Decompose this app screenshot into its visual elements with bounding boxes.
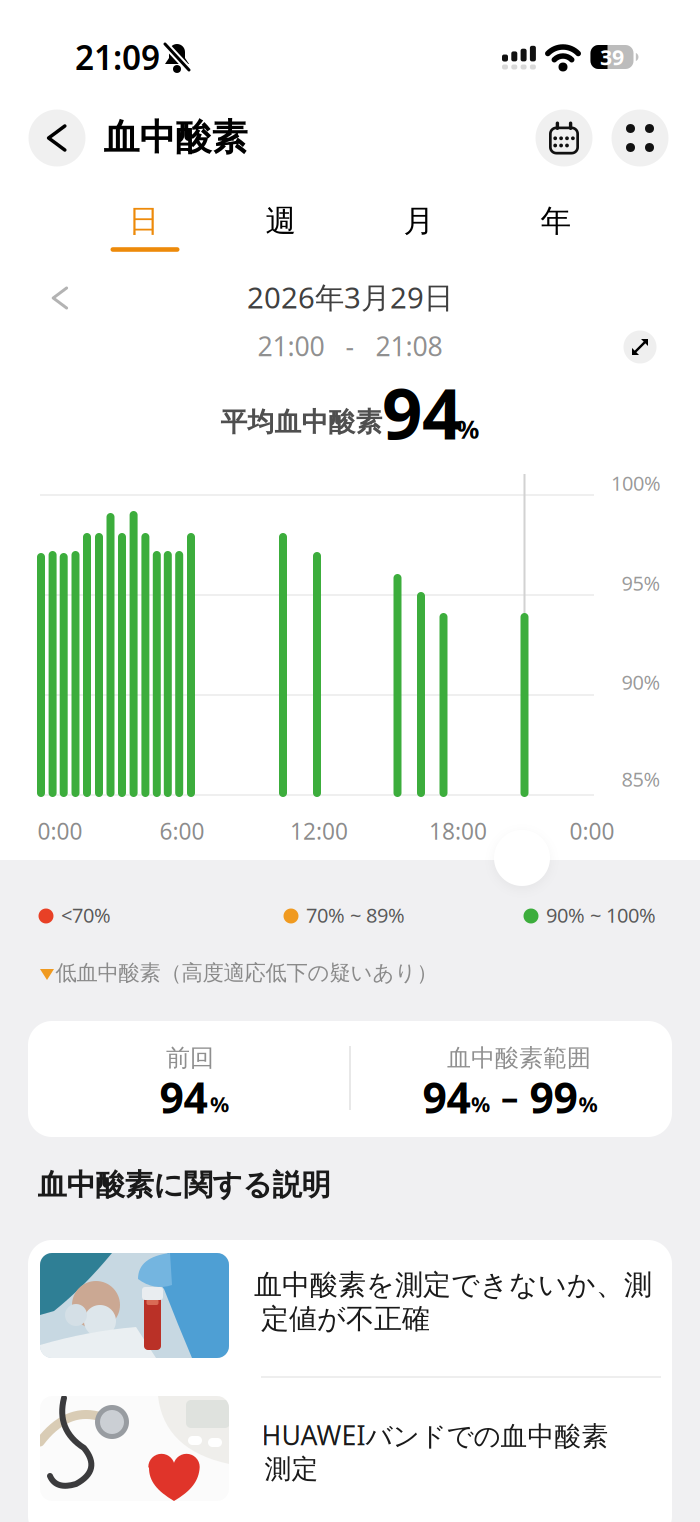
- staticText: 90%: [621, 669, 660, 695]
- staticText: HUAWEIバンドでの血中酸素: [261, 1417, 608, 1453]
- staticText: 70% ~ 89%: [306, 902, 405, 928]
- staticText: 95%: [621, 570, 660, 596]
- staticText: 低血中酸素（高度適応低下の疑いあり）: [55, 960, 437, 986]
- staticText: %: [210, 1090, 229, 1118]
- staticText: 99: [529, 1069, 577, 1125]
- staticText: %: [578, 1090, 597, 1118]
- button[interactable]: Previous day: [40, 278, 80, 318]
- staticText: 0:00: [569, 816, 614, 846]
- staticText: 血中酸素範囲: [447, 1043, 591, 1073]
- staticText: 0:00: [37, 816, 82, 846]
- staticText: 94: [159, 1069, 207, 1125]
- staticText: 94: [422, 1069, 470, 1125]
- button[interactable]: 週: [226, 195, 336, 247]
- staticText: 血中酸素に関する説明: [37, 1167, 330, 1203]
- staticText: 100%: [611, 470, 661, 496]
- staticText: 年: [540, 202, 571, 240]
- staticText: 21:09: [75, 35, 160, 79]
- staticText: 90% ~ 100%: [546, 902, 656, 928]
- button[interactable]: Landscape view: [623, 330, 656, 363]
- button[interactable]: 年: [501, 195, 611, 247]
- staticText: –: [501, 1073, 518, 1119]
- button[interactable]: 血中酸素を測定できないか、測: [28, 1240, 672, 1377]
- staticText: 日: [128, 202, 159, 240]
- staticText: 前回: [166, 1043, 214, 1073]
- button[interactable]: Back: [28, 109, 85, 166]
- staticText: %: [456, 412, 479, 446]
- staticText: 月: [403, 202, 434, 240]
- staticText: 週: [265, 202, 296, 240]
- staticText: 血中酸素: [103, 115, 247, 160]
- button[interactable]: Calendar: [535, 109, 592, 166]
- staticText: 血中酸素を測定できないか、測: [254, 1268, 652, 1302]
- staticText: %: [471, 1090, 490, 1118]
- staticText: 21:00 - 21:08: [257, 328, 442, 364]
- staticText: 測定: [264, 1453, 318, 1485]
- button[interactable]: 日: [89, 195, 199, 247]
- staticText: 18:00: [429, 816, 487, 846]
- button[interactable]: HUAWEIバンドでの血中酸素: [28, 1380, 672, 1517]
- staticText: 2026年3月29日: [247, 277, 453, 316]
- staticText: 85%: [621, 766, 660, 792]
- button[interactable]: 月: [364, 195, 474, 247]
- staticText: 94: [382, 365, 462, 459]
- staticText: 定値が不正確: [261, 1302, 430, 1336]
- button[interactable]: More options: [611, 109, 668, 166]
- staticText: <70%: [61, 902, 111, 928]
- staticText: 平均血中酸素: [220, 406, 382, 438]
- staticText: 12:00: [290, 816, 348, 846]
- staticText: 39: [600, 43, 624, 71]
- staticText: 6:00: [159, 816, 204, 846]
